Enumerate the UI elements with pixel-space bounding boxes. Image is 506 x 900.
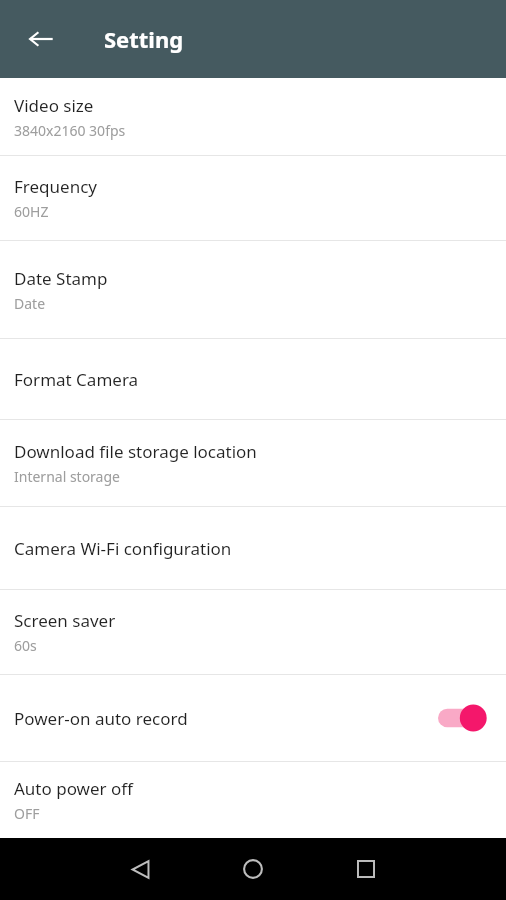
staticText: Frequency: [14, 175, 97, 198]
button[interactable]: Date Stamp: [0, 241, 506, 338]
button[interactable]: Back: [113, 842, 167, 896]
staticText: 60s: [14, 636, 37, 655]
staticText: Camera Wi-Fi configuration: [14, 537, 232, 560]
staticText: Auto power off: [14, 777, 133, 800]
staticText: 60HZ: [14, 202, 49, 221]
staticText: Video size: [14, 94, 94, 117]
button[interactable]: Download file storage location: [0, 420, 506, 506]
staticText: Setting: [104, 24, 184, 54]
button[interactable]: Power-on auto record: [0, 675, 506, 761]
staticText: Internal storage: [14, 467, 120, 486]
staticText: 3840x2160 30fps: [14, 121, 126, 140]
staticText: Power-on auto record: [14, 707, 188, 730]
button[interactable]: Screen saver: [0, 590, 506, 674]
button[interactable]: Recent apps: [339, 842, 393, 896]
button[interactable]: Back: [17, 15, 65, 63]
button[interactable]: Format Camera: [0, 339, 506, 419]
staticText: Format Camera: [14, 368, 139, 391]
button[interactable]: Video size: [0, 78, 506, 155]
button[interactable]: Power-on auto record toggle: [438, 702, 490, 734]
button[interactable]: Auto power off: [0, 762, 506, 838]
staticText: Screen saver: [14, 609, 116, 632]
staticText: OFF: [14, 804, 40, 823]
button[interactable]: Frequency: [0, 156, 506, 240]
staticText: Date: [14, 294, 46, 313]
staticText: Download file storage location: [14, 440, 257, 463]
button[interactable]: Camera Wi-Fi configuration: [0, 507, 506, 589]
staticText: Date Stamp: [14, 267, 108, 290]
button[interactable]: Home: [226, 842, 280, 896]
